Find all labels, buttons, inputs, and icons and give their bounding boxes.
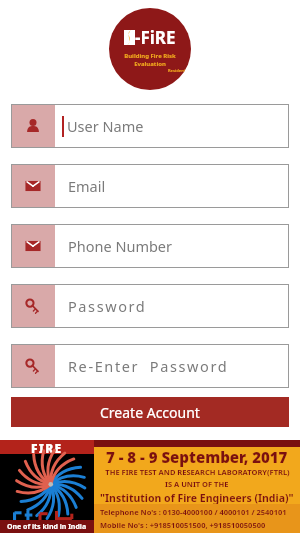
button[interactable]: Create Account	[11, 397, 289, 427]
staticText: -FiRE	[135, 26, 176, 49]
staticText: Phone Number	[68, 236, 173, 256]
button[interactable]: Re-Enter Password	[11, 344, 289, 388]
staticText: FIRE	[31, 440, 63, 454]
staticText: IS A UNIT OF THE	[165, 479, 229, 489]
button[interactable]: E-FiRE logo	[109, 8, 191, 90]
staticText: "Institution of Fire Engineers (India)"	[100, 491, 294, 504]
staticText: Residential	[168, 68, 191, 73]
staticText: User Name	[67, 116, 144, 136]
staticText: THE FIRE TEST AND RESEARCH LABORATORY(FT…	[105, 467, 290, 477]
staticText: Mobile No's : +918510051500, +9185100505…	[100, 520, 266, 530]
staticText: Building Fire Risk Evaluation	[109, 52, 191, 68]
staticText: Telephone No's : 0130-4000100 / 4000101 …	[100, 507, 287, 517]
staticText: Password	[68, 296, 147, 316]
staticText: One of its kind in India	[7, 522, 87, 532]
staticText: Re-Enter Password	[68, 356, 229, 376]
staticText: Email	[68, 176, 106, 196]
staticText: 7 - 8 - 9 September, 2017	[106, 447, 288, 467]
button[interactable]: FIRE 2017 event banner	[0, 440, 300, 533]
button[interactable]: Phone Number	[11, 224, 289, 268]
button[interactable]: User Name	[11, 104, 289, 148]
button[interactable]: Password	[11, 284, 289, 328]
button[interactable]: Email	[11, 164, 289, 208]
staticText: Create Account	[100, 403, 200, 422]
